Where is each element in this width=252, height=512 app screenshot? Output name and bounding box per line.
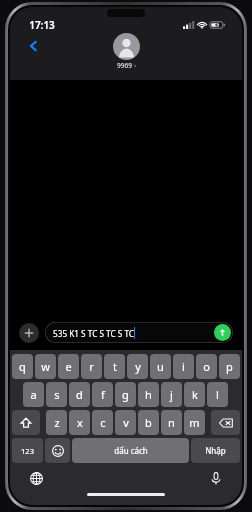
staticText: l <box>216 387 219 402</box>
button[interactable]: o <box>196 354 217 379</box>
button[interactable]: Contact 9969 <box>113 33 140 70</box>
staticText: e <box>65 359 72 374</box>
staticText: g <box>122 387 129 402</box>
staticText: f <box>101 387 105 402</box>
staticText: s <box>54 387 60 402</box>
button[interactable]: b <box>138 410 159 435</box>
staticText: d <box>76 387 83 402</box>
staticText: q <box>19 359 26 374</box>
button[interactable]: Add attachment <box>19 323 39 343</box>
button[interactable]: d <box>69 382 90 407</box>
button[interactable]: e <box>58 354 79 379</box>
button[interactable]: Dictation <box>207 469 225 487</box>
button[interactable]: Send <box>214 324 231 341</box>
staticText: o <box>203 359 210 374</box>
button[interactable]: l <box>207 382 228 407</box>
button[interactable]: j <box>161 382 182 407</box>
staticText: 9969 <box>117 61 132 70</box>
staticText: y <box>135 359 141 374</box>
staticText: w <box>41 359 50 374</box>
staticText: k <box>192 387 198 402</box>
staticText: z <box>54 415 60 430</box>
button[interactable]: Backspace <box>211 410 240 435</box>
staticText: v <box>123 415 129 430</box>
staticText: h <box>145 387 152 402</box>
staticText: m <box>189 415 200 430</box>
staticText: x <box>77 415 83 430</box>
staticText: dấu cách <box>114 445 148 456</box>
button[interactable]: f <box>92 382 113 407</box>
button[interactable]: r <box>81 354 102 379</box>
button[interactable]: t <box>104 354 125 379</box>
button[interactable]: h <box>138 382 159 407</box>
staticText: c <box>100 415 106 430</box>
button[interactable]: n <box>161 410 182 435</box>
button[interactable]: Space <box>72 438 189 463</box>
button[interactable]: Emoji <box>45 438 70 463</box>
staticText: 535 K1 S TC S TC S TC <box>53 328 134 339</box>
button[interactable]: Numbers <box>12 438 43 463</box>
button[interactable]: u <box>150 354 171 379</box>
button[interactable]: s <box>46 382 67 407</box>
button[interactable]: Back <box>23 35 45 57</box>
staticText: r <box>89 359 94 374</box>
button[interactable]: 535 K1 S TC S TC S TC <box>45 322 233 343</box>
button[interactable]: z <box>46 410 67 435</box>
button[interactable]: y <box>127 354 148 379</box>
button[interactable]: Shift <box>12 410 40 435</box>
button[interactable]: c <box>92 410 113 435</box>
button[interactable]: q <box>12 354 33 379</box>
staticText: p <box>226 359 233 374</box>
button[interactable]: p <box>219 354 240 379</box>
button[interactable]: a <box>23 382 44 407</box>
button[interactable]: k <box>184 382 205 407</box>
staticText: i <box>182 359 185 374</box>
staticText: b <box>145 415 152 430</box>
staticText: j <box>170 387 173 402</box>
button[interactable]: g <box>115 382 136 407</box>
staticText: 17:13 <box>29 18 55 32</box>
staticText: n <box>168 415 175 430</box>
button[interactable]: i <box>173 354 194 379</box>
staticText: Nhập <box>205 445 226 456</box>
staticText: t <box>113 359 117 374</box>
staticText: 123 <box>21 446 34 456</box>
button[interactable]: w <box>35 354 56 379</box>
button[interactable]: Return <box>191 438 240 463</box>
button[interactable]: m <box>184 410 205 435</box>
staticText: u <box>157 359 164 374</box>
button[interactable]: v <box>115 410 136 435</box>
button[interactable]: x <box>69 410 90 435</box>
button[interactable]: Change keyboard <box>27 469 45 487</box>
staticText: a <box>30 387 37 402</box>
